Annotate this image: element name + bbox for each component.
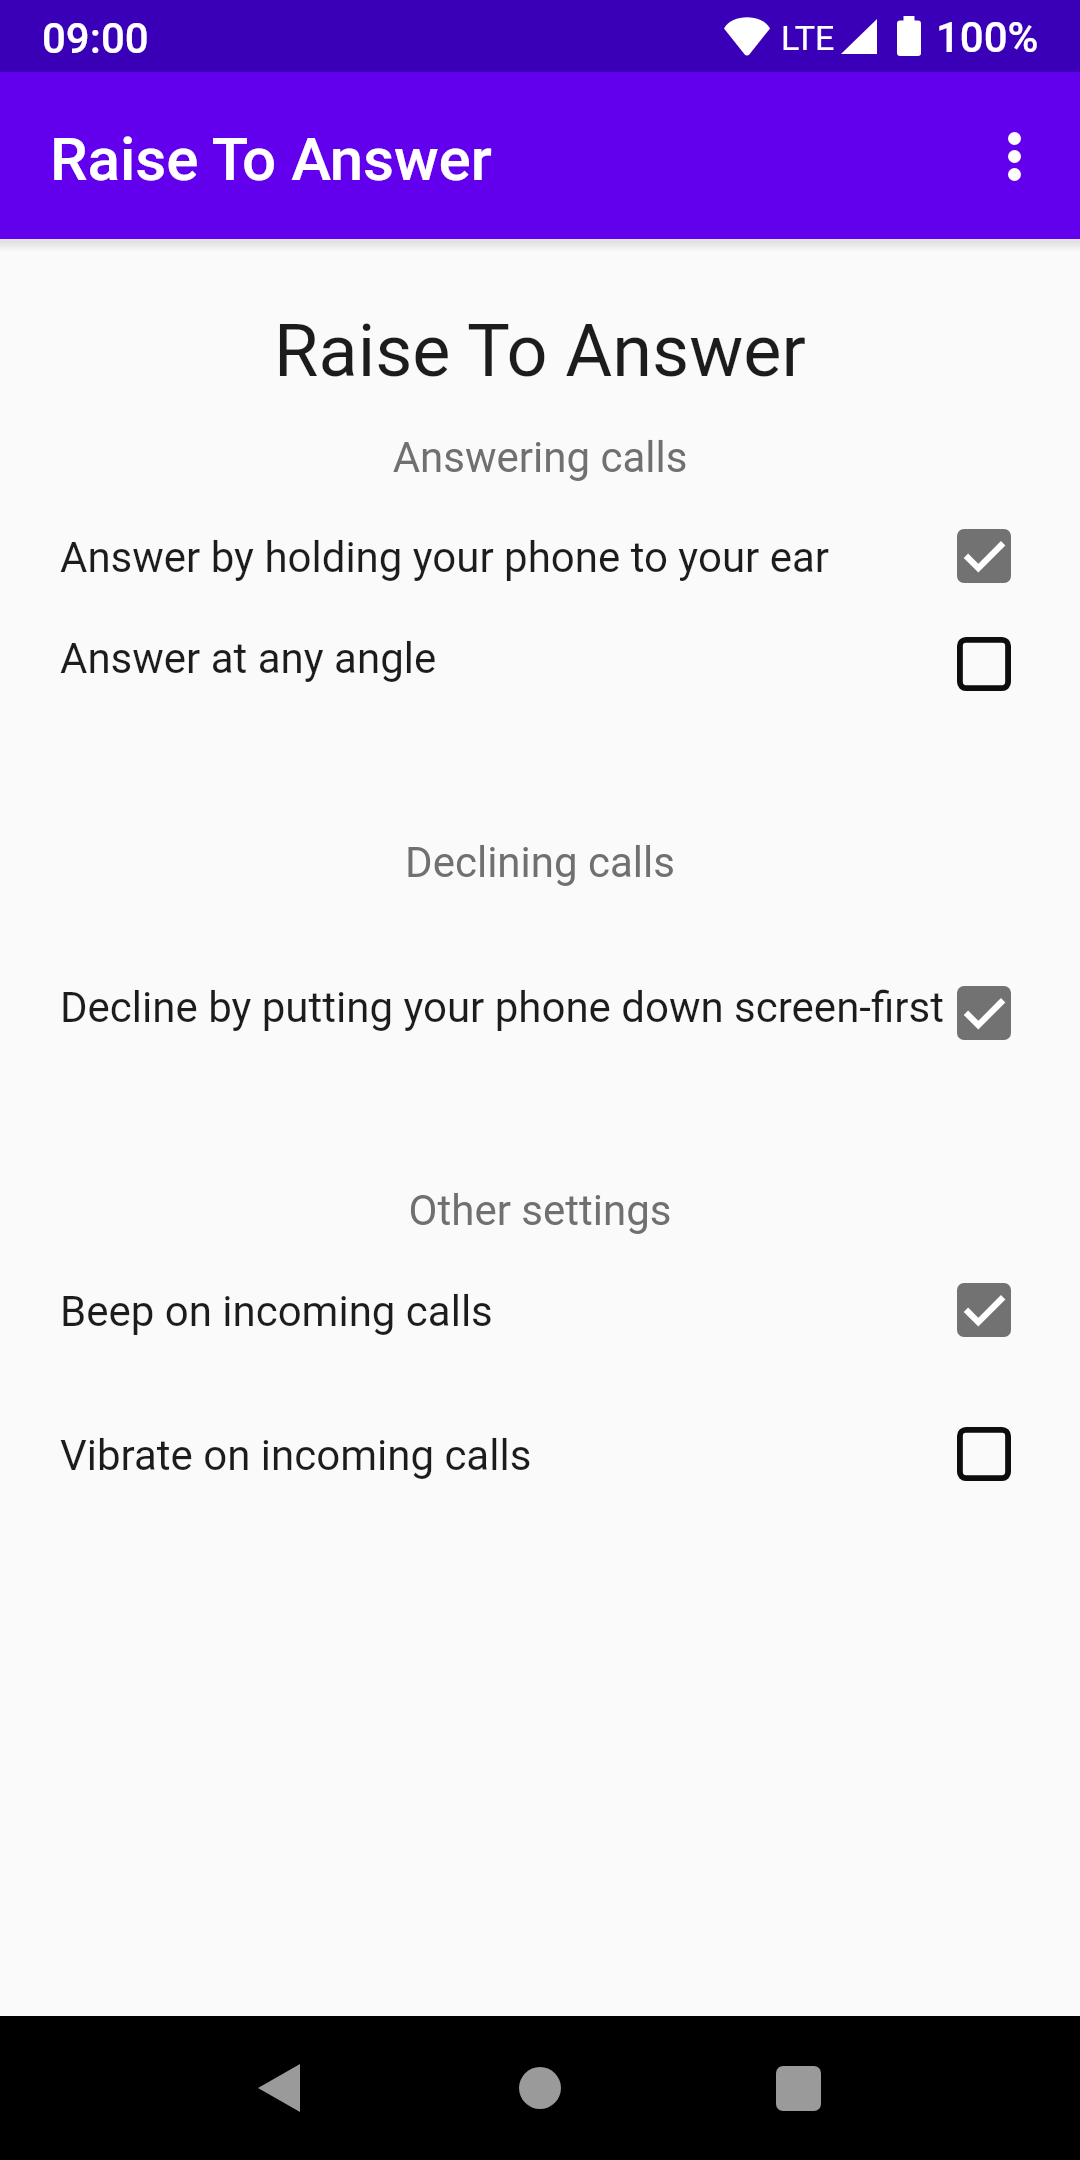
button[interactable]: Back [219, 2016, 339, 2160]
staticText: Decline by putting your phone down scree… [60, 983, 944, 1032]
button[interactable]: Home [480, 2016, 600, 2160]
button[interactable]: More options [966, 108, 1062, 204]
staticText: Raise To Answer [50, 124, 492, 194]
button[interactable]: Beep on incoming calls [0, 1267, 1080, 1355]
button[interactable]: Recent apps [738, 2016, 858, 2160]
staticText: 100% [936, 13, 1039, 62]
button[interactable]: Vibrate on incoming calls [0, 1411, 1080, 1499]
staticText: Raise To Answer [0, 309, 1080, 393]
staticText: Vibrate on incoming calls [60, 1431, 532, 1480]
staticText: Beep on incoming calls [60, 1287, 493, 1336]
staticText: Other settings [0, 1186, 1080, 1235]
staticText: 09:00 [42, 14, 149, 63]
staticText: Answering calls [0, 433, 1080, 482]
staticText: Answer by holding your phone to your ear [60, 533, 830, 582]
button[interactable]: Answer by holding your phone to your ear [0, 513, 1080, 601]
staticText: LTE [781, 18, 835, 58]
button[interactable]: Decline by putting your phone down scree… [0, 963, 1080, 1051]
button[interactable]: Answer at any angle [0, 614, 1080, 702]
staticText: Answer at any angle [60, 634, 437, 683]
staticText: Declining calls [0, 838, 1080, 887]
